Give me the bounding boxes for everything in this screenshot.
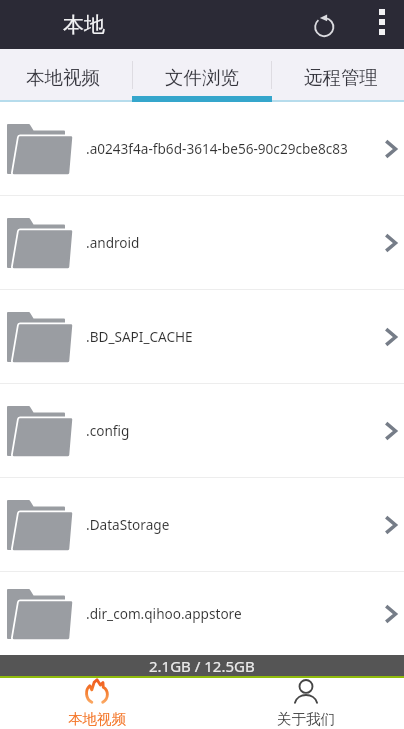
staticText: 远程管理	[304, 66, 378, 89]
button[interactable]: 远程管理	[269, 49, 404, 102]
staticText: 本地视频	[26, 66, 100, 89]
staticText: 文件浏览	[165, 66, 239, 89]
button[interactable]: .android	[0, 196, 404, 289]
button[interactable]: .config	[0, 384, 404, 477]
button[interactable]: Refresh	[289, 0, 359, 49]
button[interactable]: .a0243f4a-fb6d-3614-be56-90c29cbe8c83	[0, 102, 404, 195]
button[interactable]: More options	[359, 0, 404, 49]
button[interactable]: 本地视频	[0, 678, 202, 729]
button[interactable]: 关于我们	[202, 678, 404, 729]
button[interactable]: 文件浏览	[134, 49, 269, 102]
staticText: .a0243f4a-fb6d-3614-be56-90c29cbe8c83	[86, 139, 378, 158]
staticText: .BD_SAPI_CACHE	[86, 327, 378, 346]
staticText: 关于我们	[277, 710, 335, 728]
button[interactable]: .BD_SAPI_CACHE	[0, 290, 404, 383]
button[interactable]: .DataStorage	[0, 478, 404, 571]
staticText: .dir_com.qihoo.appstore	[86, 604, 378, 623]
button[interactable]: .dir_com.qihoo.appstore	[0, 572, 404, 655]
staticText: .config	[86, 421, 378, 440]
staticText: 本地视频	[68, 710, 126, 728]
staticText: 本地	[63, 12, 105, 38]
staticText: .DataStorage	[86, 515, 378, 534]
staticText: .android	[86, 233, 378, 252]
staticText: 2.1GB / 12.5GB	[149, 656, 255, 676]
button[interactable]: 本地视频	[0, 49, 134, 102]
